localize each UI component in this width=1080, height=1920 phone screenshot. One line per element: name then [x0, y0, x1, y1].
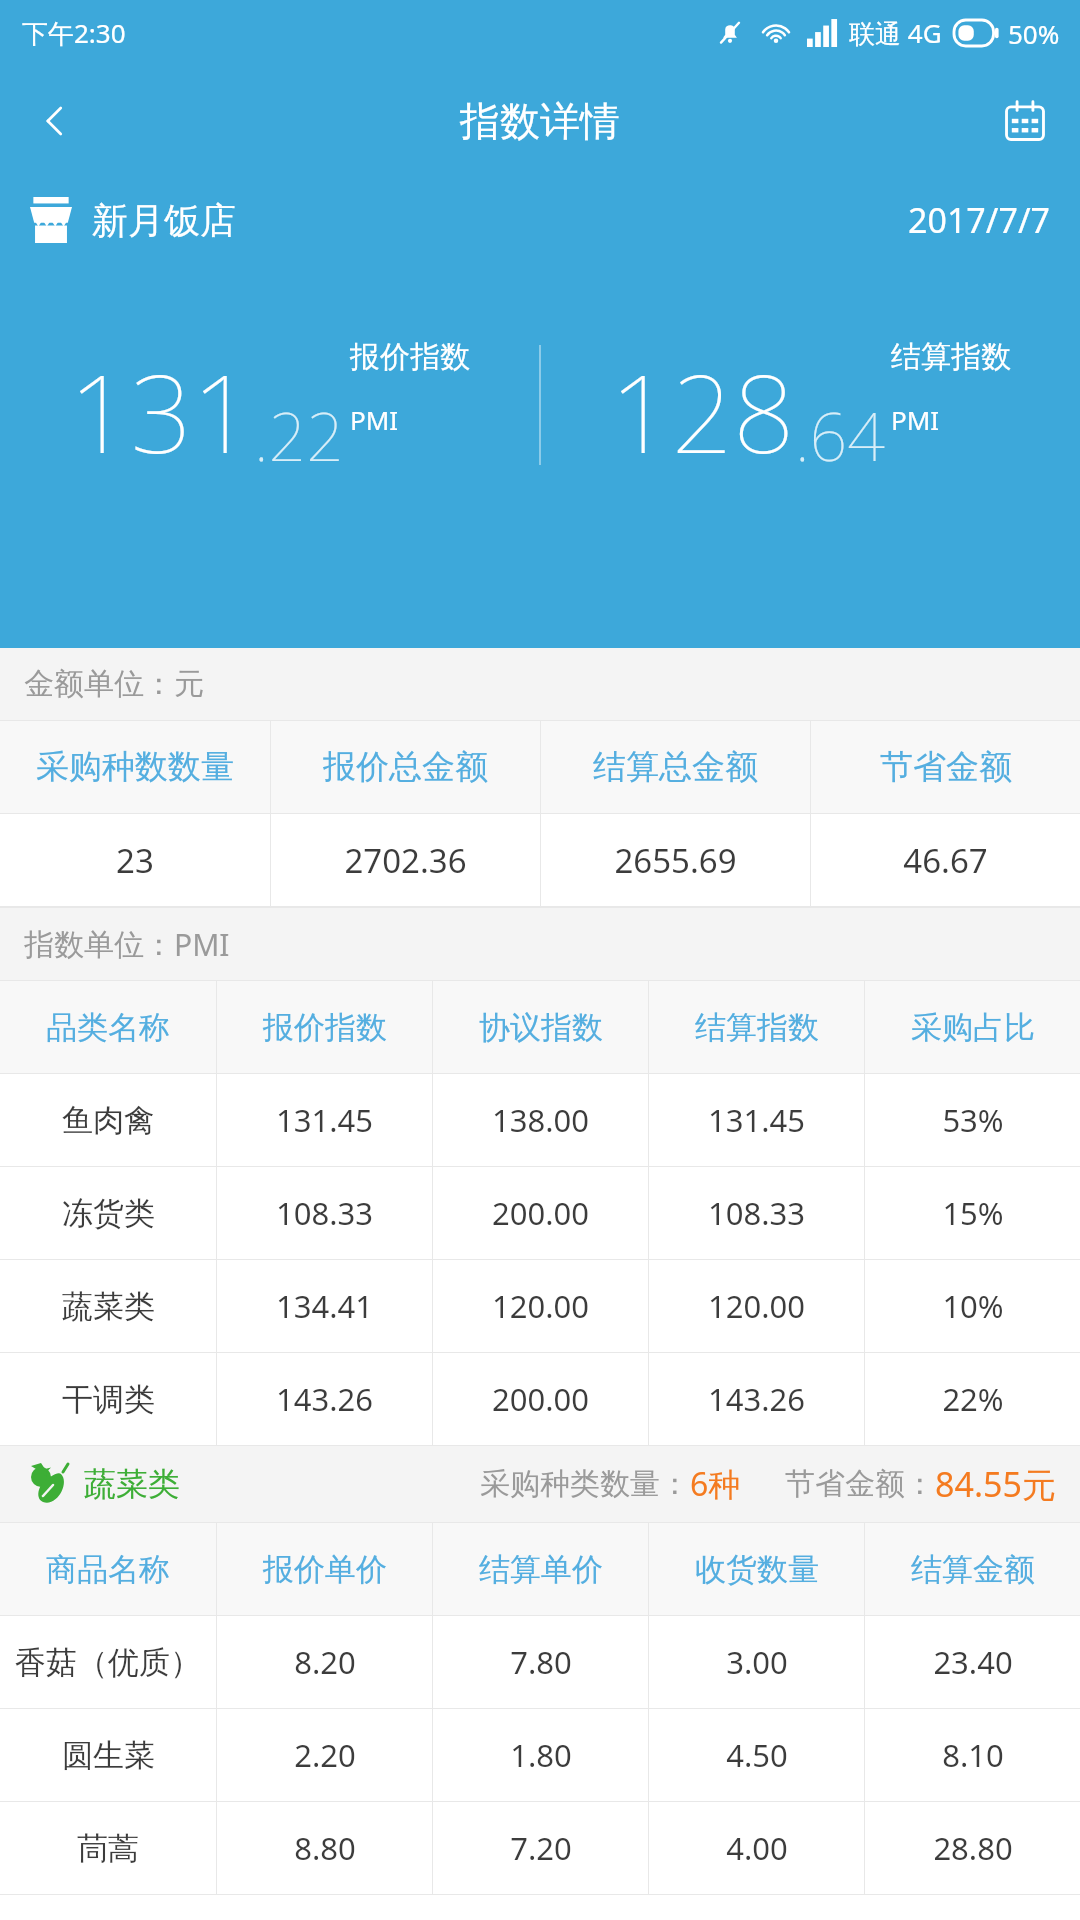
- button[interactable]: Back: [0, 66, 110, 176]
- staticText: 采购种类数量：: [480, 1465, 690, 1503]
- staticText: 200.00: [492, 1378, 589, 1420]
- staticText: 收货数量: [695, 1550, 819, 1589]
- staticText: 茼蒿: [77, 1829, 139, 1868]
- staticText: 4.00: [726, 1827, 788, 1869]
- staticText: 报价指数: [350, 338, 470, 376]
- staticText: 2655.69: [614, 838, 737, 883]
- staticText: 120.00: [708, 1285, 805, 1327]
- staticText: 138.00: [492, 1099, 589, 1141]
- button[interactable]: 香菇（优质）: [0, 1616, 1080, 1708]
- staticText: 结算指数: [695, 1008, 819, 1047]
- staticText: 84.55元: [935, 1461, 1056, 1507]
- staticText: 131.45: [708, 1099, 805, 1141]
- staticText: 蔬菜类: [84, 1464, 180, 1504]
- staticText: 蔬菜类: [62, 1287, 155, 1326]
- staticText: 3.00: [726, 1641, 788, 1683]
- staticText: 22%: [942, 1378, 1004, 1420]
- staticText: 报价指数: [263, 1008, 387, 1047]
- staticText: 商品名称: [46, 1550, 170, 1589]
- button[interactable]: 茼蒿: [0, 1802, 1080, 1894]
- staticText: 鱼肉禽: [62, 1101, 155, 1140]
- button[interactable]: 干调类: [0, 1353, 1080, 1445]
- staticText: 干调类: [62, 1380, 155, 1419]
- staticText: 冻货类: [62, 1194, 155, 1233]
- staticText: 采购占比: [911, 1008, 1035, 1047]
- staticText: 采购种数数量: [36, 746, 234, 788]
- staticText: 下午2:30: [22, 15, 126, 51]
- staticText: 2017/7/7: [908, 197, 1050, 243]
- staticText: 120.00: [492, 1285, 589, 1327]
- staticText: 7.80: [510, 1641, 572, 1683]
- staticText: 2.20: [294, 1734, 356, 1776]
- staticText: 结算金额: [911, 1550, 1035, 1589]
- staticText: 131: [69, 338, 254, 480]
- button[interactable]: 蔬菜类: [0, 1260, 1080, 1352]
- staticText: 28.80: [933, 1827, 1013, 1869]
- staticText: 8.10: [942, 1734, 1004, 1776]
- staticText: 元: [174, 665, 204, 703]
- staticText: 23.40: [933, 1641, 1013, 1683]
- staticText: 2702.36: [344, 838, 467, 883]
- staticText: 报价总金额: [323, 746, 488, 788]
- staticText: 50%: [1008, 16, 1060, 51]
- staticText: 15%: [942, 1192, 1004, 1234]
- staticText: 108.33: [276, 1192, 373, 1234]
- staticText: 128: [610, 338, 795, 480]
- staticText: PMI: [891, 402, 940, 437]
- staticText: 200.00: [492, 1192, 589, 1234]
- staticText: 节省金额：: [785, 1465, 935, 1503]
- staticText: 8.20: [294, 1641, 356, 1683]
- staticText: 联通 4G: [849, 15, 942, 51]
- staticText: 143.26: [708, 1378, 805, 1420]
- staticText: 7.20: [510, 1827, 572, 1869]
- staticText: 指数单位：: [24, 926, 174, 964]
- staticText: 报价单价: [263, 1550, 387, 1589]
- staticText: 4.50: [726, 1734, 788, 1776]
- staticText: 结算指数: [891, 338, 1011, 376]
- staticText: 圆生菜: [62, 1736, 155, 1775]
- staticText: PMI: [174, 924, 230, 965]
- staticText: 143.26: [276, 1378, 373, 1420]
- staticText: 23: [116, 838, 154, 883]
- staticText: 结算单价: [479, 1550, 603, 1589]
- staticText: 香菇（优质）: [15, 1643, 201, 1682]
- staticText: .64: [795, 390, 885, 480]
- staticText: .22: [254, 390, 344, 480]
- staticText: 10%: [942, 1285, 1004, 1327]
- staticText: 1.80: [510, 1734, 572, 1776]
- staticText: 6种: [690, 1462, 741, 1506]
- staticText: 节省金额: [880, 746, 1012, 788]
- staticText: 131.45: [276, 1099, 373, 1141]
- staticText: 46.67: [903, 838, 988, 883]
- staticText: 53%: [942, 1099, 1004, 1141]
- staticText: 108.33: [708, 1192, 805, 1234]
- staticText: 协议指数: [479, 1008, 603, 1047]
- staticText: 134.41: [276, 1285, 373, 1327]
- staticText: 结算总金额: [593, 746, 758, 788]
- staticText: PMI: [350, 402, 399, 437]
- staticText: 8.80: [294, 1827, 356, 1869]
- button[interactable]: 鱼肉禽: [0, 1074, 1080, 1166]
- staticText: 金额单位：: [24, 665, 174, 703]
- staticText: 品类名称: [46, 1008, 170, 1047]
- staticText: 指数详情: [460, 96, 620, 146]
- button[interactable]: 圆生菜: [0, 1709, 1080, 1801]
- button[interactable]: Calendar: [970, 66, 1080, 176]
- button[interactable]: 冻货类: [0, 1167, 1080, 1259]
- button[interactable]: 23: [0, 814, 1080, 906]
- staticText: 新月饭店: [92, 198, 236, 243]
